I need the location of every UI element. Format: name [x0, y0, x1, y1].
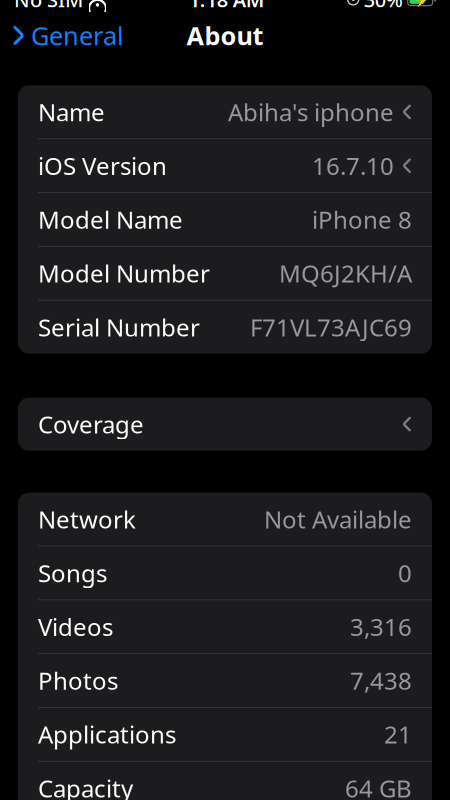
button[interactable]: Network — [18, 493, 432, 546]
button[interactable]: Serial Number — [18, 301, 432, 354]
staticText: iPhone 8 — [312, 204, 412, 235]
button[interactable]: Videos — [18, 600, 432, 653]
staticText: Model Name — [38, 204, 183, 235]
staticText: MQ6J2KH/A — [279, 257, 412, 289]
button[interactable]: General — [0, 13, 124, 58]
staticText: Model Number — [38, 257, 210, 289]
staticText: No SIM — [14, 0, 83, 13]
button[interactable]: Model Name — [18, 193, 432, 246]
staticText: 21 — [384, 718, 412, 750]
button[interactable]: iOS Version — [18, 139, 432, 192]
staticText: 64 GB — [345, 772, 412, 800]
button[interactable]: Songs — [18, 546, 432, 599]
button[interactable]: Model Number — [18, 247, 432, 300]
staticText: General — [31, 19, 124, 52]
staticText: Abiha's iphone — [228, 96, 394, 128]
staticText: Photos — [38, 665, 118, 696]
staticText: Applications — [38, 718, 176, 750]
staticText: ⚡ — [414, 0, 431, 7]
staticText: 3,316 — [350, 611, 412, 643]
staticText: Songs — [38, 557, 107, 589]
staticText: 30% — [364, 0, 403, 13]
button[interactable]: Coverage — [18, 398, 432, 451]
staticText: iOS Version — [38, 150, 167, 182]
staticText: 1:18 AM — [189, 0, 265, 13]
staticText: Coverage — [38, 408, 144, 440]
button[interactable]: Name — [18, 85, 432, 138]
staticText: 0 — [398, 557, 412, 589]
staticText: Network — [38, 503, 136, 535]
button[interactable]: Photos — [18, 654, 432, 707]
staticText: 16.7.10 — [312, 150, 394, 182]
staticText: Videos — [38, 611, 113, 643]
button[interactable]: Applications — [18, 708, 432, 761]
staticText: 7,438 — [350, 665, 412, 696]
staticText: Capacity — [38, 772, 133, 800]
button[interactable]: Capacity — [18, 762, 432, 800]
staticText: Not Available — [264, 503, 412, 535]
staticText: Serial Number — [38, 311, 200, 343]
staticText: Name — [38, 96, 105, 128]
staticText: F71VL73AJC69 — [250, 311, 412, 343]
staticText: About — [186, 19, 263, 52]
